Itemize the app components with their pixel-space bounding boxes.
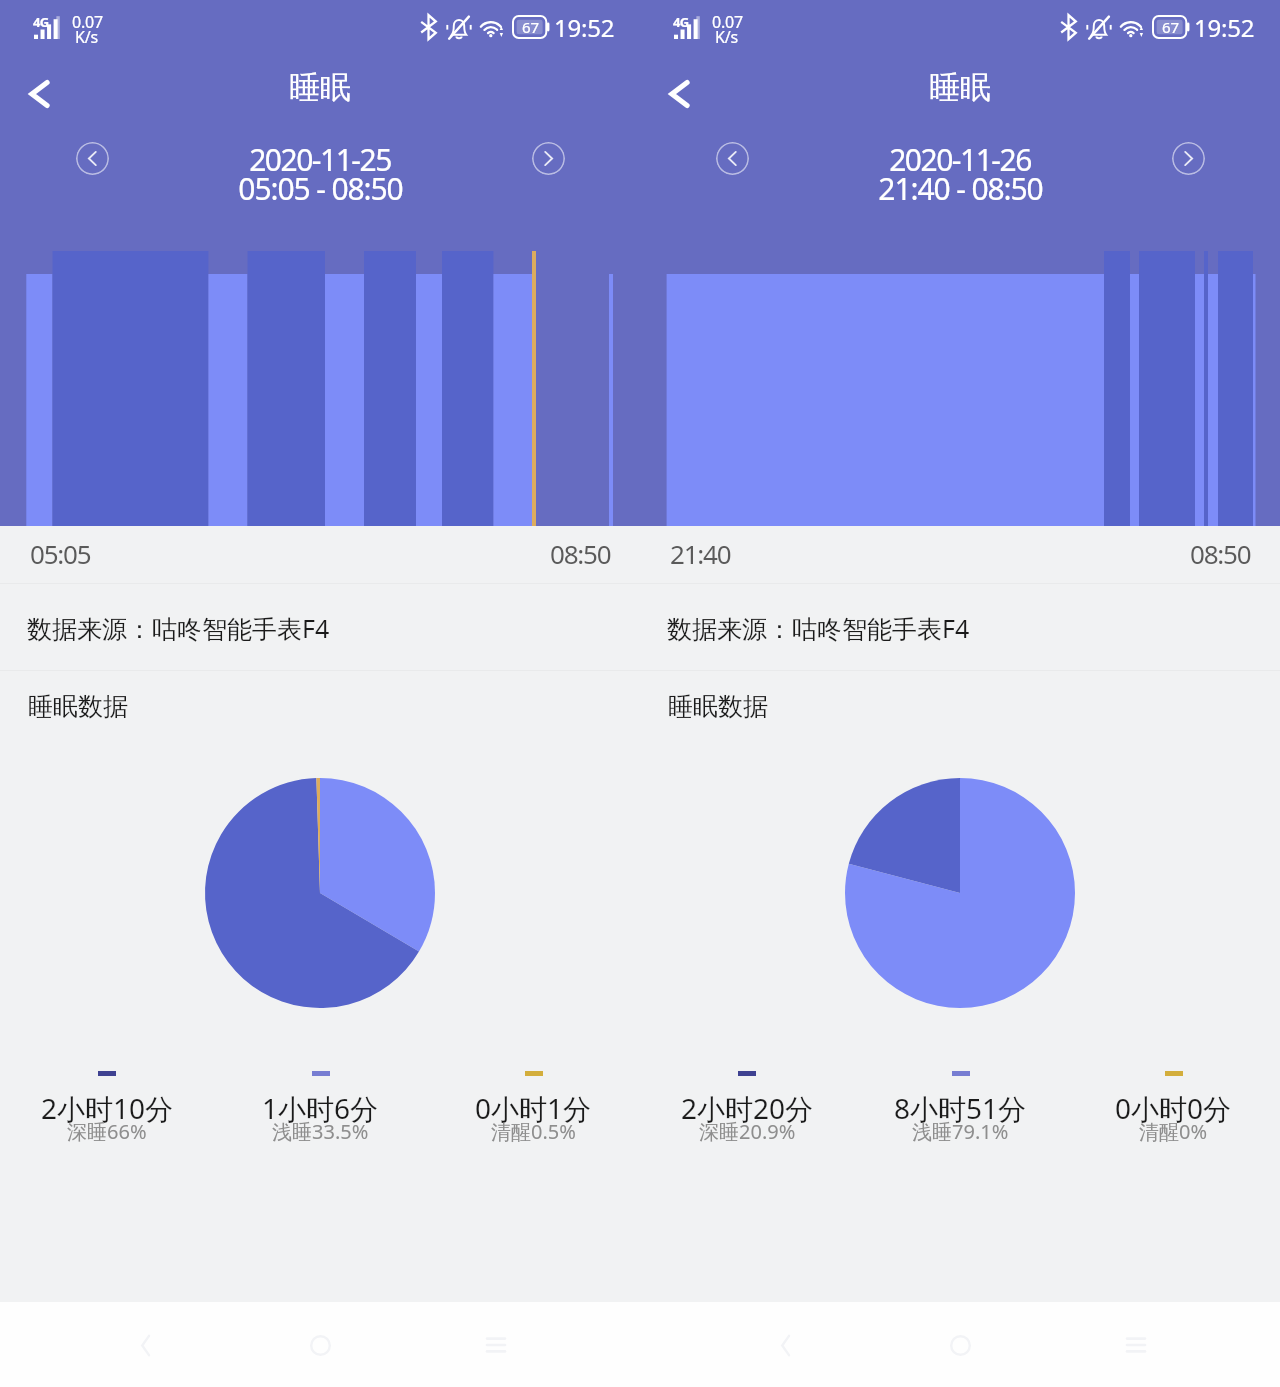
- staticText: 08:50: [1190, 536, 1251, 571]
- button[interactable]: 8小时51分: [854, 1070, 1067, 1160]
- staticText: 浅睡33.5%: [272, 1118, 369, 1145]
- staticText: 08:50: [550, 536, 611, 571]
- button[interactable]: 2小时10分: [0, 1070, 214, 1160]
- staticText: 21:40 - 08:50: [878, 168, 1043, 209]
- staticText: 2小时20分: [681, 1089, 814, 1127]
- staticText: 19:52: [554, 11, 615, 44]
- staticText: 21:40: [670, 536, 731, 571]
- staticText: 4G: [673, 13, 689, 31]
- staticText: 67: [1162, 17, 1180, 37]
- button[interactable]: 下一天: [532, 142, 565, 175]
- staticText: 4G: [33, 13, 49, 31]
- button[interactable]: 0小时0分: [1067, 1070, 1280, 1160]
- button[interactable]: 下一天: [1172, 142, 1205, 175]
- staticText: 0.07: [72, 11, 103, 33]
- staticText: 05:05: [30, 536, 91, 571]
- staticText: 0小时0分: [1115, 1089, 1232, 1127]
- staticText: 0小时1分: [475, 1089, 592, 1127]
- staticText: 睡眠数据: [668, 691, 768, 722]
- button[interactable]: 上一天: [76, 142, 109, 175]
- staticText: 睡眠: [929, 68, 991, 107]
- staticText: 2020-11-26: [889, 139, 1031, 180]
- staticText: 清醒0.5%: [491, 1118, 576, 1145]
- staticText: 深睡66%: [67, 1118, 147, 1145]
- button[interactable]: 0小时1分: [427, 1070, 640, 1160]
- staticText: 数据来源：咕咚智能手表F4: [27, 611, 330, 645]
- staticText: 睡眠: [289, 68, 351, 107]
- button[interactable]: 1小时6分: [214, 1070, 427, 1160]
- staticText: 05:05 - 08:50: [238, 168, 403, 209]
- staticText: 睡眠数据: [28, 691, 128, 722]
- button[interactable]: 返回: [648, 63, 710, 125]
- staticText: 深睡20.9%: [699, 1118, 796, 1145]
- staticText: 浅睡79.1%: [912, 1118, 1009, 1145]
- staticText: 数据来源：咕咚智能手表F4: [667, 611, 970, 645]
- staticText: 19:52: [1194, 11, 1255, 44]
- staticText: 8小时51分: [894, 1089, 1027, 1127]
- staticText: 1小时6分: [262, 1089, 379, 1127]
- staticText: 2020-11-25: [249, 139, 391, 180]
- button[interactable]: 返回: [8, 63, 70, 125]
- staticText: 清醒0%: [1139, 1118, 1208, 1145]
- staticText: 2小时10分: [41, 1089, 174, 1127]
- staticText: 0.07: [712, 11, 743, 33]
- staticText: K/s: [715, 26, 738, 48]
- button[interactable]: 上一天: [716, 142, 749, 175]
- staticText: K/s: [75, 26, 98, 48]
- button[interactable]: 2小时20分: [640, 1070, 854, 1160]
- staticText: 67: [522, 17, 540, 37]
